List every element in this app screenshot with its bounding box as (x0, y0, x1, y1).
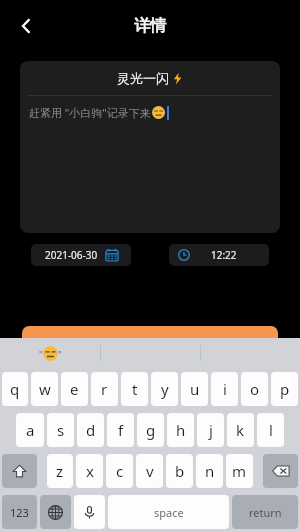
button[interactable]: a (16, 413, 44, 447)
staticText: h (176, 420, 186, 440)
staticText: 2021-06-30 (45, 248, 98, 262)
button[interactable]: w (31, 372, 58, 406)
button[interactable]: h (167, 413, 194, 447)
staticText: space (154, 505, 184, 520)
staticText: s (57, 420, 65, 440)
button[interactable]: f (107, 413, 134, 447)
button[interactable]: v (136, 454, 163, 488)
button[interactable]: b (166, 454, 193, 488)
button[interactable]: q (2, 372, 28, 406)
staticText: t (132, 379, 138, 399)
button[interactable]: x (76, 454, 103, 488)
staticText: m (232, 461, 247, 481)
button[interactable]: Switch language (40, 495, 71, 529)
button[interactable]: p (271, 372, 298, 406)
button[interactable]: i (211, 372, 238, 406)
staticText: u (190, 379, 200, 399)
staticText: f (118, 420, 124, 440)
button[interactable]: 保存 (22, 326, 278, 368)
button[interactable]: s (47, 413, 74, 447)
staticText: 12:22 (211, 248, 237, 262)
staticText: v (146, 461, 154, 481)
button[interactable]: z (47, 454, 73, 488)
button[interactable]: e (61, 372, 88, 406)
staticText: e (70, 379, 79, 399)
button[interactable]: 2021-06-30 (31, 244, 131, 266)
button[interactable]: n (196, 454, 223, 488)
staticText: g (146, 420, 156, 440)
button[interactable]: g (137, 413, 164, 447)
staticText: k (236, 420, 245, 440)
staticText: 灵光一闪 (117, 70, 169, 86)
button[interactable]: Shift (2, 454, 37, 488)
staticText: z (56, 461, 64, 481)
button[interactable]: r (91, 372, 118, 406)
button[interactable]: l (257, 413, 284, 447)
staticText: p (280, 379, 290, 399)
button[interactable]: 灵光一闪 (20, 61, 280, 233)
button[interactable]: j (197, 413, 224, 447)
staticText: i (223, 379, 227, 399)
button[interactable]: Voice input (74, 495, 105, 529)
staticText: x (86, 461, 94, 481)
staticText: r (101, 379, 108, 399)
staticText: b (175, 461, 185, 481)
staticText: w (39, 379, 51, 399)
button[interactable]: k (227, 413, 254, 447)
staticText: o (250, 379, 260, 399)
button[interactable]: c (106, 454, 133, 488)
staticText: " (39, 348, 43, 360)
button[interactable]: d (77, 413, 104, 447)
button[interactable]: space (108, 495, 229, 529)
staticText: l (269, 420, 273, 440)
button[interactable]: 123 (2, 495, 37, 529)
button[interactable]: Back (6, 6, 46, 46)
button[interactable]: Backspace (263, 454, 298, 488)
staticText: a (26, 420, 35, 440)
button[interactable]: y (151, 372, 178, 406)
staticText: j (209, 420, 213, 440)
button[interactable]: u (181, 372, 208, 406)
staticText: 赶紧用 "小白驹"记录下来 (29, 105, 151, 120)
staticText: y (161, 379, 169, 399)
staticText: c (116, 461, 124, 481)
button[interactable]: 12:22 (169, 244, 269, 266)
staticText: 123 (10, 505, 29, 520)
staticText: q (10, 379, 20, 399)
staticText: " (58, 348, 62, 360)
staticText: 详情 (134, 16, 166, 36)
button[interactable]: " (0, 338, 100, 368)
staticText: d (86, 420, 96, 440)
button[interactable]: o (241, 372, 268, 406)
button[interactable]: m (226, 454, 253, 488)
staticText: return (249, 505, 282, 520)
staticText: n (205, 461, 215, 481)
button[interactable]: t (121, 372, 148, 406)
button[interactable]: return (232, 495, 298, 529)
